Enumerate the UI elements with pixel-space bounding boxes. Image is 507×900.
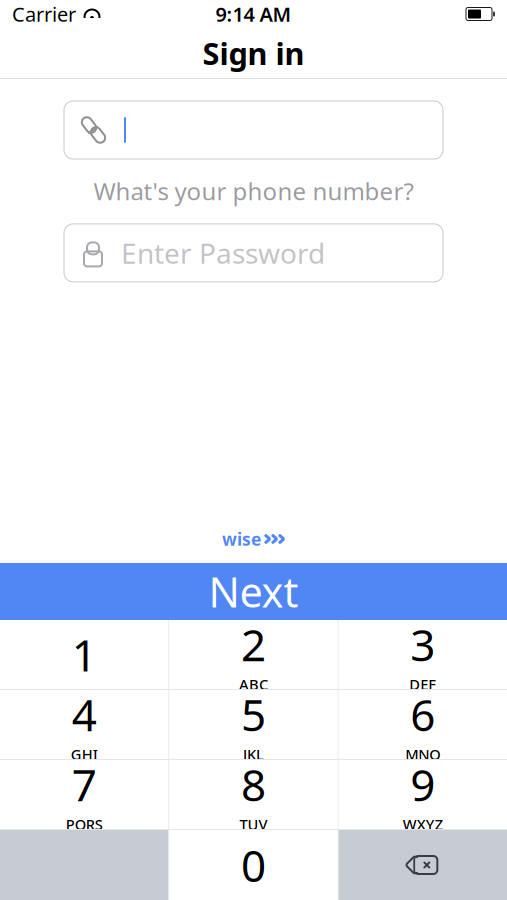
staticText: 6 — [410, 685, 435, 743]
staticText: 9 — [410, 755, 435, 813]
staticText: What's your phone number? — [93, 175, 413, 207]
button[interactable] — [64, 101, 443, 159]
staticText: WXYZ — [403, 814, 443, 834]
staticText: 8 — [241, 755, 266, 813]
button[interactable]: Enter Password — [64, 224, 443, 282]
staticText: 7 — [72, 755, 97, 813]
staticText: 3 — [410, 615, 435, 673]
staticText: GHI — [71, 744, 98, 764]
staticText: 2 — [241, 615, 266, 673]
staticText: 4 — [72, 685, 97, 743]
staticText: PQRS — [66, 814, 103, 834]
button[interactable]: 8 — [169, 760, 338, 829]
staticText: ABC — [239, 674, 268, 694]
button[interactable]: 4 — [0, 690, 168, 759]
button[interactable]: 2 — [169, 620, 338, 689]
button[interactable]: 5 — [169, 690, 338, 759]
staticText: DEF — [409, 674, 436, 694]
staticText: 9:14 AM — [215, 1, 291, 27]
staticText: 5 — [241, 685, 266, 743]
staticText: Sign in — [202, 33, 304, 73]
staticText: JKL — [243, 744, 264, 764]
staticText: 1 — [72, 625, 97, 684]
button[interactable]: 7 — [0, 760, 168, 829]
staticText: Carrier — [12, 1, 76, 27]
staticText: 0 — [241, 836, 266, 894]
button[interactable]: 1 — [0, 620, 168, 689]
button[interactable]: Delete — [339, 830, 507, 900]
button[interactable]: 6 — [339, 690, 507, 759]
staticText: MNO — [405, 744, 440, 764]
button[interactable]: Next — [0, 563, 507, 620]
button[interactable]: 3 — [339, 620, 507, 689]
staticText: Enter Password — [121, 234, 325, 271]
button[interactable]: 9 — [339, 760, 507, 829]
staticText: TUV — [239, 814, 267, 834]
staticText: wise — [222, 527, 261, 550]
staticText: Next — [208, 564, 298, 619]
button[interactable]: 0 — [169, 830, 338, 900]
